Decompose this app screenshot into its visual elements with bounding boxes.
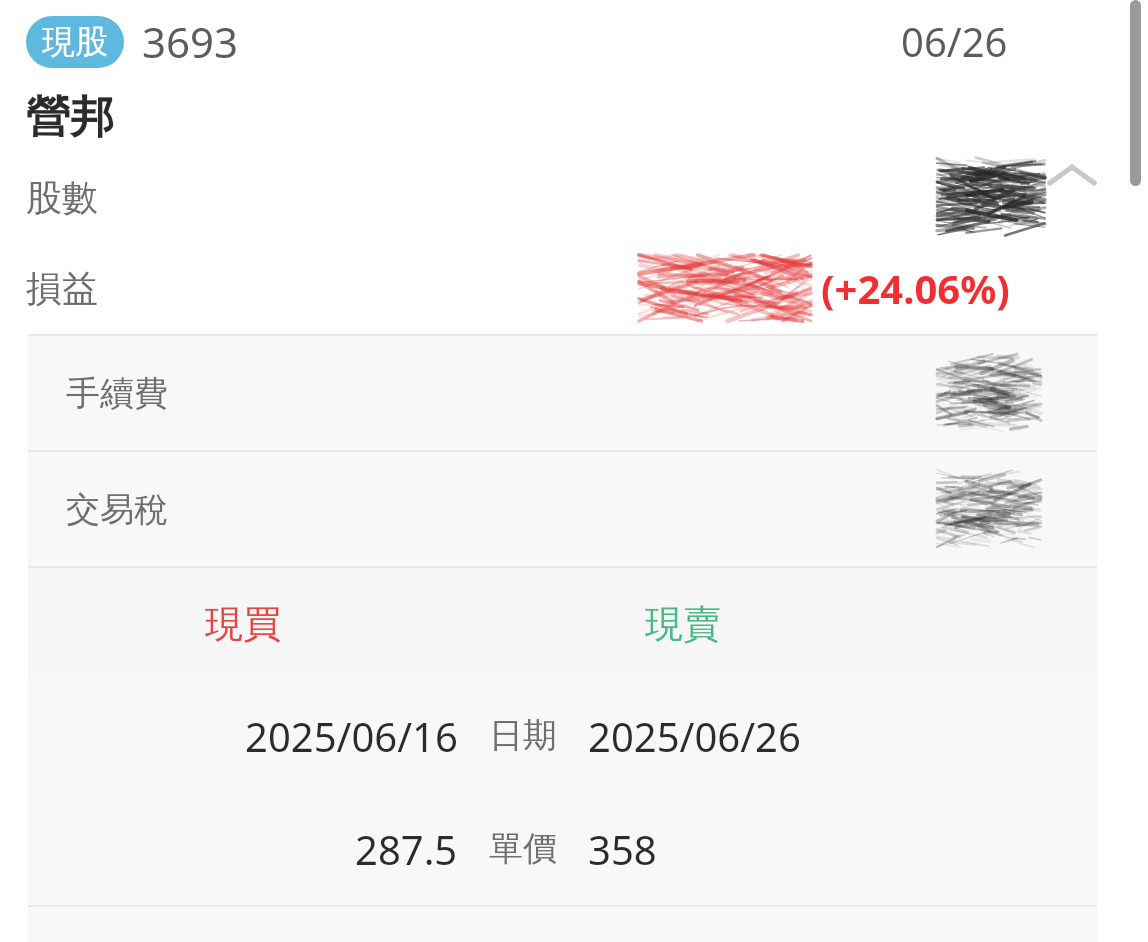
staticText: 現買 (205, 600, 281, 648)
staticText: 損益 (26, 266, 98, 311)
button[interactable]: Collapse (1044, 154, 1100, 210)
button[interactable]: 287.5 (28, 792, 1097, 905)
button[interactable]: 現股 (26, 16, 124, 68)
staticText: 手續費 (66, 372, 168, 415)
staticText: 股數 (26, 175, 98, 220)
staticText: 06/26 (901, 14, 1008, 68)
button[interactable]: 現買 (205, 600, 281, 648)
staticText: 現賣 (645, 600, 721, 648)
staticText: 287.5 (355, 822, 458, 876)
staticText: 日期 (489, 714, 557, 757)
button[interactable]: 手續費 (28, 336, 1097, 450)
staticText: 交易稅 (66, 488, 168, 531)
staticText: 現股 (42, 21, 108, 63)
staticText: 3693 (142, 13, 239, 70)
button[interactable]: 交易稅 (28, 452, 1097, 566)
staticText: (+24.06%) (821, 261, 1010, 315)
staticText: 單價 (489, 827, 557, 870)
button[interactable]: 2025/06/16 (28, 679, 1097, 792)
staticText: 2025/06/16 (245, 709, 458, 763)
button[interactable]: 現賣 (645, 600, 721, 648)
staticText: 358 (588, 822, 657, 876)
staticText: 營邦 (26, 90, 114, 145)
staticText: 2025/06/26 (588, 709, 801, 763)
